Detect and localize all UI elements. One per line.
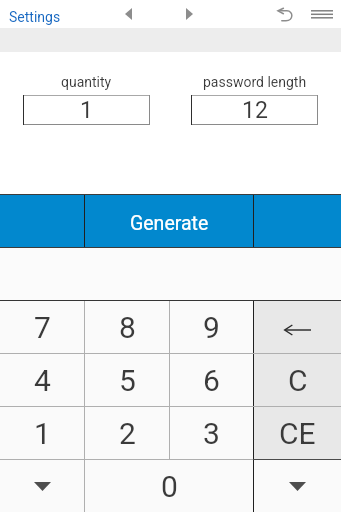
button[interactable]: Menu — [306, 0, 338, 28]
staticText: 8 — [119, 310, 136, 345]
button[interactable]: 6 — [170, 354, 253, 406]
staticText: quantity — [61, 74, 112, 90]
button[interactable]: 1 — [0, 407, 84, 459]
button[interactable]: Next page — [254, 460, 341, 512]
button[interactable]: 4 — [0, 354, 84, 406]
staticText: 0 — [161, 469, 178, 504]
button[interactable]: 8 — [85, 301, 169, 353]
button[interactable]: 12 — [191, 95, 318, 125]
button[interactable]: 3 — [170, 407, 253, 459]
button[interactable]: 1 — [23, 95, 150, 125]
button[interactable]: Next — [175, 0, 203, 28]
button[interactable]: 0 — [85, 460, 253, 512]
staticText: 2 — [119, 416, 136, 451]
button[interactable]: 9 — [170, 301, 253, 353]
button[interactable]: Backspace — [254, 301, 341, 353]
staticText: CE — [279, 416, 316, 451]
staticText: 9 — [203, 310, 220, 345]
button[interactable]: 5 — [85, 354, 169, 406]
staticText: password length — [203, 74, 307, 90]
button[interactable]: 7 — [0, 301, 84, 353]
staticText: 1 — [80, 97, 93, 124]
staticText: 6 — [203, 363, 220, 398]
staticText: 3 — [203, 416, 220, 451]
button[interactable]: Previous page — [0, 460, 84, 512]
staticText: 7 — [34, 310, 51, 345]
button[interactable]: Settings — [0, 0, 70, 28]
staticText: Settings — [9, 9, 61, 25]
staticText: C — [288, 363, 308, 398]
staticText: 4 — [34, 363, 51, 398]
staticText: 12 — [242, 97, 268, 124]
button[interactable]: Undo — [270, 0, 300, 28]
button[interactable]: Generate — [85, 195, 253, 247]
staticText: 5 — [119, 363, 136, 398]
staticText: Generate — [130, 212, 209, 235]
staticText: 1 — [34, 416, 51, 451]
button[interactable]: CE — [254, 407, 341, 459]
button[interactable]: 2 — [85, 407, 169, 459]
button[interactable]: Previous — [114, 0, 142, 28]
button[interactable]: C — [254, 354, 341, 406]
